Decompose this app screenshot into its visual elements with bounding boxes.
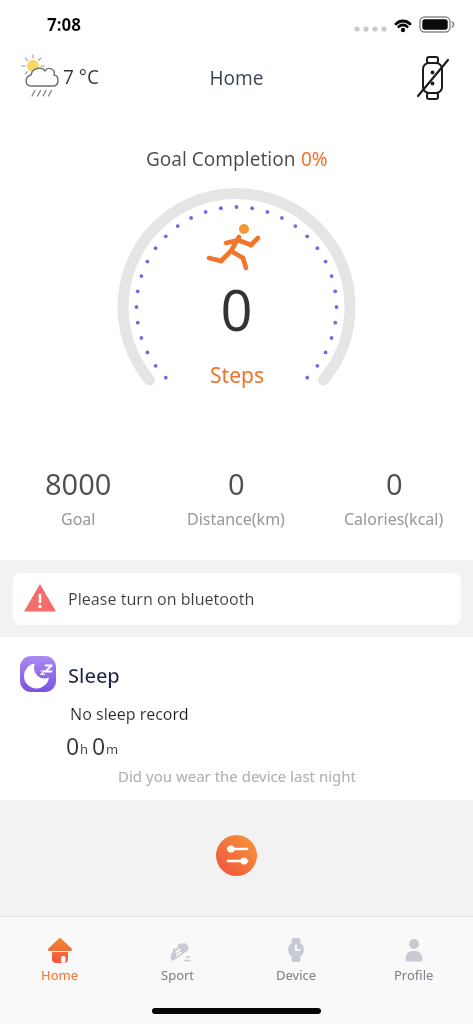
staticText: 8000 <box>45 464 112 503</box>
button[interactable]: Home <box>0 917 119 997</box>
button[interactable]: Please turn on bluetooth <box>13 573 461 625</box>
staticText: Calories(kcal) <box>344 508 444 530</box>
button[interactable] <box>408 54 456 102</box>
staticText: Sport <box>161 966 195 984</box>
staticText: 0 <box>66 730 80 761</box>
button[interactable] <box>216 835 257 876</box>
staticText: Device <box>276 966 317 984</box>
staticText: 0 <box>228 464 245 503</box>
button[interactable] <box>0 645 473 795</box>
staticText: 0 <box>386 464 403 503</box>
staticText: Did you wear the device last night <box>118 766 356 786</box>
staticText: m <box>106 740 119 758</box>
staticText: Sleep <box>68 662 120 689</box>
button[interactable]: Profile <box>355 917 473 997</box>
staticText: Profile <box>394 966 434 984</box>
staticText: Distance(km) <box>187 508 285 530</box>
staticText: 0 <box>220 271 253 347</box>
staticText: Steps <box>210 361 264 390</box>
staticText: Goal Completion <box>146 146 301 172</box>
staticText: Goal <box>61 508 96 530</box>
staticText: 0 <box>92 730 106 761</box>
staticText: 7:08 <box>47 13 81 36</box>
staticText: Home <box>209 65 264 91</box>
staticText: No sleep record <box>70 703 189 725</box>
staticText: h <box>80 740 92 758</box>
staticText: 7 °C <box>63 64 99 90</box>
button[interactable]: Sport <box>119 917 237 997</box>
button[interactable]: Device <box>237 917 355 997</box>
staticText: 0% <box>301 146 328 172</box>
staticText: Please turn on bluetooth <box>68 588 255 610</box>
staticText: Home <box>41 966 78 984</box>
